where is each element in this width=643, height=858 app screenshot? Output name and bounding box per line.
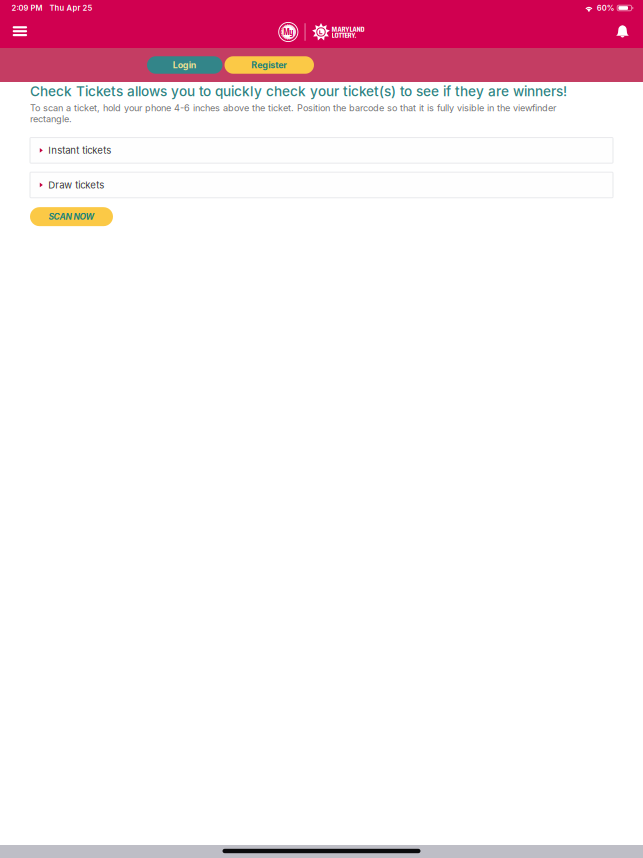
staticText: To scan a ticket, hold your phone 4-6 in…: [30, 102, 556, 125]
staticText: Thu Apr 25: [49, 3, 92, 13]
staticText: 60%: [597, 3, 615, 13]
button[interactable]: SCAN NOW: [30, 207, 113, 226]
staticText: Register: [251, 60, 287, 70]
button[interactable]: Register: [224, 56, 314, 74]
staticText: Check Tickets allows you to quickly chec…: [30, 83, 567, 99]
button[interactable]: Instant tickets: [30, 138, 613, 163]
button[interactable]: Maryland Lottery: [278, 22, 364, 42]
button[interactable]: Draw tickets: [30, 172, 613, 198]
button[interactable]: Notifications: [605, 16, 639, 48]
staticText: MARYLAND: [331, 23, 364, 35]
staticText: 2:09 PM: [11, 3, 42, 13]
staticText: Draw tickets: [48, 179, 104, 191]
button[interactable]: Menu: [3, 16, 37, 48]
button[interactable]: Login: [147, 56, 222, 74]
staticText: LOTTERY.: [331, 28, 356, 41]
staticText: SCAN NOW: [48, 212, 94, 222]
staticText: Instant tickets: [48, 144, 111, 156]
staticText: My: [283, 24, 293, 39]
staticText: Login: [173, 60, 197, 70]
